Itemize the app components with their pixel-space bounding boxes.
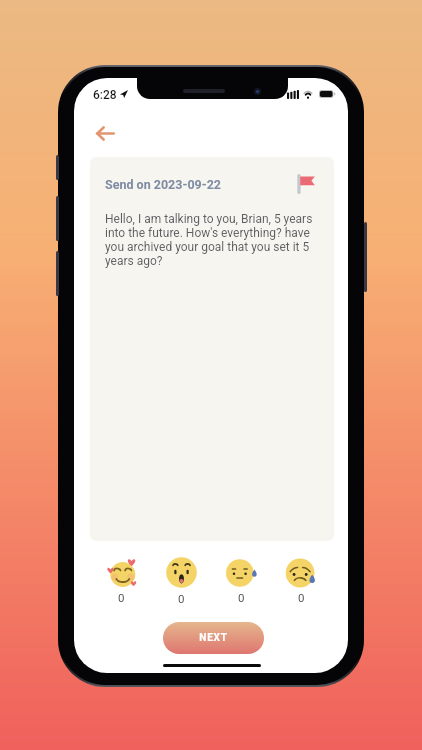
staticText: Send on 2023-09-22 — [105, 177, 221, 192]
button[interactable]: Awkward reaction — [220, 558, 262, 610]
staticText: NEXT — [199, 632, 228, 644]
staticText: 0 — [178, 592, 185, 605]
button[interactable]: Back — [87, 120, 123, 146]
button[interactable]: Sad reaction — [280, 558, 322, 610]
staticText: Hello, I am talking to you, Brian, 5 yea… — [105, 212, 320, 268]
button[interactable]: NEXT — [163, 622, 264, 654]
staticText: 0 — [118, 591, 125, 604]
staticText: 6:28 — [93, 88, 117, 102]
button[interactable]: Wow reaction — [160, 557, 202, 609]
staticText: 0 — [238, 591, 245, 604]
button[interactable]: Love reaction — [100, 558, 142, 610]
staticText: 0 — [298, 591, 305, 604]
